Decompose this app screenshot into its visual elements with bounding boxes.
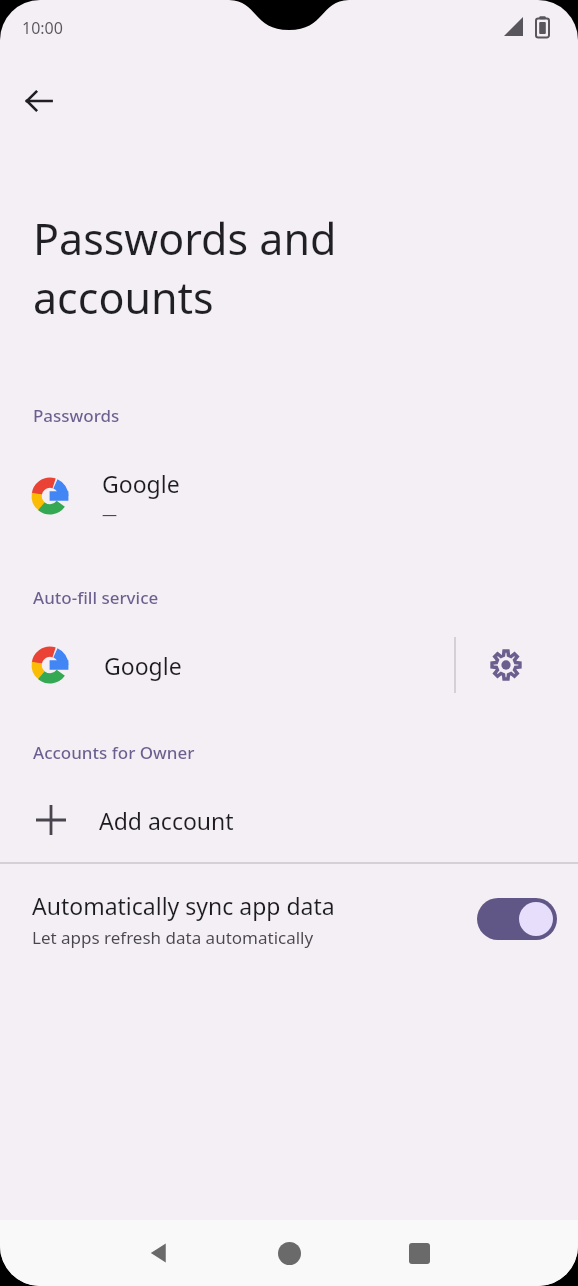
button[interactable]: Add account	[0, 783, 578, 857]
staticText: Google	[104, 650, 182, 681]
button[interactable]: Back	[124, 1220, 194, 1286]
staticText: Accounts for Owner	[33, 741, 195, 764]
staticText: Google	[102, 468, 180, 499]
staticText: —	[102, 504, 118, 524]
staticText: Let apps refresh data automatically	[32, 926, 314, 949]
staticText: Add account	[99, 805, 234, 836]
staticText: 10:00	[22, 17, 63, 39]
button[interactable]: Home	[254, 1220, 324, 1286]
button[interactable]: Back	[8, 70, 70, 132]
button[interactable]: Autofill settings	[478, 637, 534, 693]
button[interactable]: Automatically sync app data	[0, 864, 578, 974]
staticText: Passwords	[33, 404, 120, 427]
button[interactable]: Google	[0, 628, 578, 702]
staticText: Automatically sync app data	[32, 890, 335, 921]
staticText: Auto-fill service	[33, 586, 159, 609]
button[interactable]: Recent apps	[384, 1220, 454, 1286]
staticText: accounts	[33, 268, 214, 327]
button[interactable]: Automatically sync app data toggle	[477, 898, 557, 940]
staticText: Passwords and	[33, 209, 337, 268]
button[interactable]: Google	[0, 450, 578, 542]
